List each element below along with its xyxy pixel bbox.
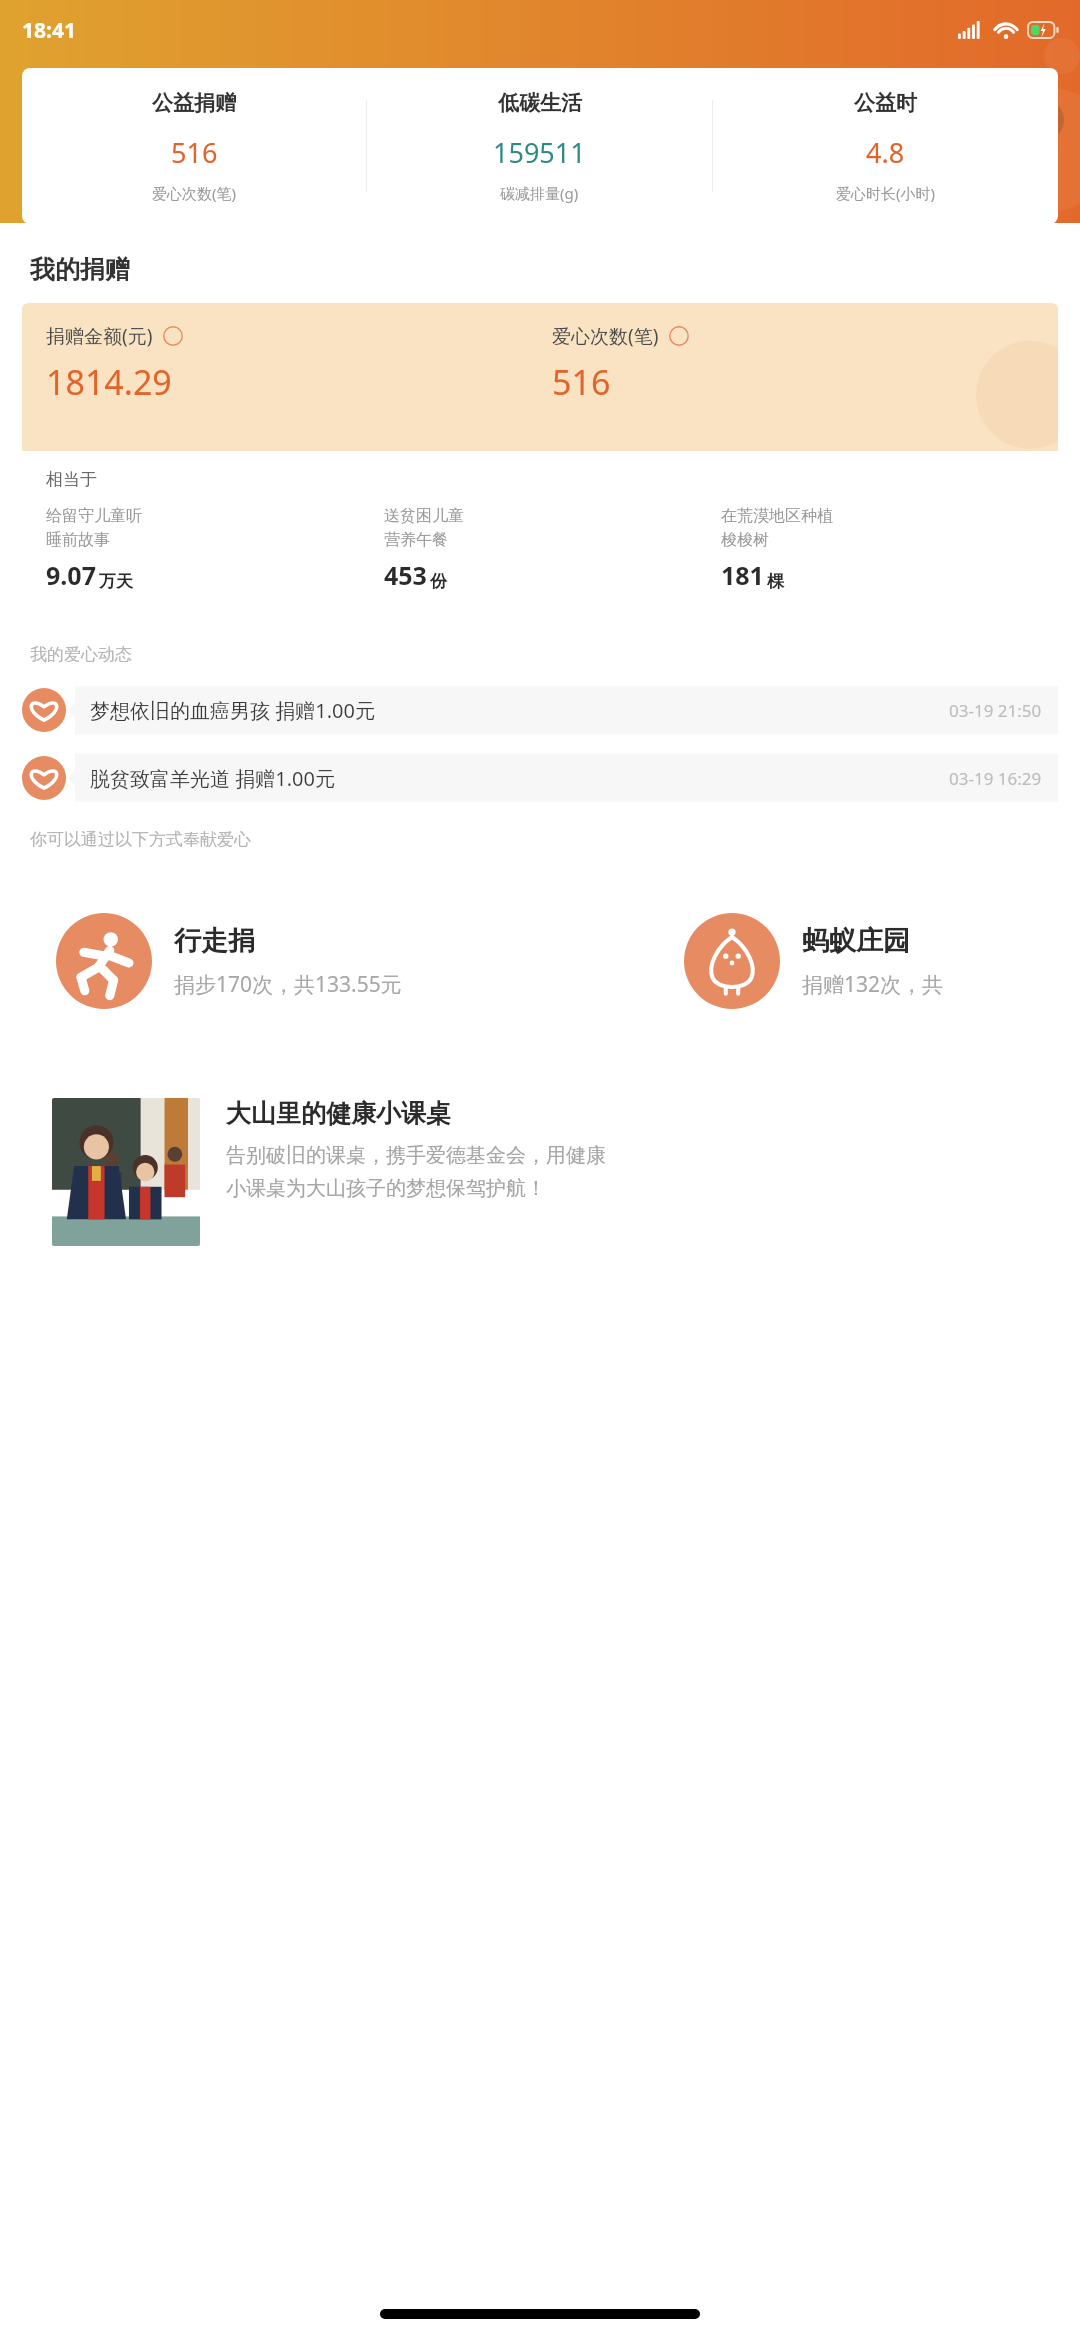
button[interactable]: 大山里的健康小课桌 bbox=[22, 1074, 1058, 1274]
staticText: 行走捐 bbox=[174, 924, 255, 958]
button[interactable]: 捐赠金额(元) bbox=[22, 303, 1058, 618]
staticText: 大山里的健康小课桌 bbox=[226, 1098, 451, 1129]
staticText: 18:41 bbox=[22, 16, 76, 45]
button[interactable]: 脱贫致富羊光道 捐赠1.00元 bbox=[22, 749, 1058, 807]
staticText: 捐赠金额(元) bbox=[46, 323, 153, 349]
staticText: 梭梭树 bbox=[721, 530, 769, 550]
staticText: 睡前故事 bbox=[46, 530, 110, 550]
staticText: 爱心次数(笔) bbox=[552, 323, 659, 349]
staticText: 03-19 16:29 bbox=[949, 767, 1042, 790]
button[interactable]: Help bbox=[669, 326, 689, 346]
button[interactable]: 蚂蚁庄园 bbox=[650, 866, 1080, 1056]
staticText: 我的公益账户 bbox=[58, 105, 208, 136]
staticText: 4.8 bbox=[866, 134, 905, 171]
staticText: 棵 bbox=[767, 571, 784, 592]
staticText: 爱心时长(小时) bbox=[836, 183, 936, 203]
staticText: 公益捐赠 bbox=[152, 90, 236, 116]
staticText: 爱心次数(笔) bbox=[152, 183, 237, 203]
button[interactable]: 行走捐 bbox=[22, 866, 634, 1056]
staticText: 营养午餐 bbox=[384, 530, 448, 550]
staticText: 小课桌为大山孩子的梦想保驾护航！ bbox=[226, 1176, 546, 1201]
staticText: 告别破旧的课桌，携手爱德基金会，用健康 bbox=[226, 1143, 606, 1168]
staticText: 1814.29 bbox=[46, 359, 172, 405]
staticText: 捐赠132次，共 bbox=[802, 970, 944, 999]
staticText: 碳减排量(g) bbox=[500, 183, 579, 203]
staticText: 蚂蚁庄园 bbox=[802, 924, 910, 958]
staticText: 万天 bbox=[99, 571, 133, 592]
staticText: 低碳生活 bbox=[498, 90, 582, 116]
staticText: 159511 bbox=[493, 134, 586, 171]
button[interactable]: 公益捐赠 bbox=[22, 90, 366, 203]
button[interactable]: 梦想依旧的血癌男孩 捐赠1.00元 bbox=[22, 681, 1058, 739]
staticText: 在荒漠地区种植 bbox=[721, 506, 833, 526]
staticText: 516 bbox=[552, 359, 611, 405]
staticText: 453 bbox=[384, 558, 427, 592]
staticText: 份 bbox=[430, 571, 447, 592]
button[interactable]: 低碳生活 bbox=[367, 90, 712, 203]
button[interactable]: 公益时 bbox=[713, 90, 1058, 203]
staticText: 181 bbox=[721, 558, 764, 592]
staticText: 你可以通过以下方式奉献爱心 bbox=[30, 829, 251, 850]
staticText: 送贫困儿童 bbox=[384, 506, 464, 526]
button[interactable]: Back bbox=[18, 99, 216, 142]
button[interactable]: 公益捐赠 bbox=[22, 68, 1058, 224]
staticText: 我的捐赠 bbox=[30, 254, 130, 285]
staticText: 516 bbox=[171, 134, 218, 171]
staticText: 相当于 bbox=[46, 469, 97, 490]
button[interactable]: More options and close bbox=[972, 99, 1064, 141]
button[interactable]: Help bbox=[163, 326, 183, 346]
button[interactable]: 爱心次数(笔) bbox=[552, 323, 1058, 405]
staticText: 捐步170次，共133.55元 bbox=[174, 970, 402, 999]
staticText: 9.07 bbox=[46, 558, 96, 592]
button[interactable]: 捐赠金额(元) bbox=[46, 323, 552, 405]
staticText: 03-19 21:50 bbox=[949, 699, 1042, 722]
staticText: 脱贫致富羊光道 捐赠1.00元 bbox=[90, 765, 335, 792]
staticText: 我的爱心动态 bbox=[30, 644, 132, 665]
staticText: 公益时 bbox=[854, 90, 917, 116]
staticText: 梦想依旧的血癌男孩 捐赠1.00元 bbox=[90, 697, 375, 724]
staticText: 给留守儿童听 bbox=[46, 506, 142, 526]
